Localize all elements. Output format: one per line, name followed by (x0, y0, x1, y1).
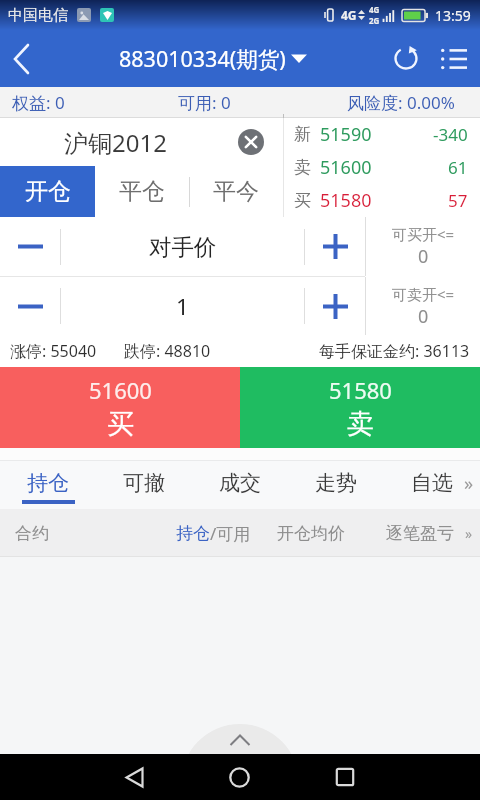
button[interactable]: 走势 (288, 461, 384, 509)
staticText: 4G (341, 7, 357, 23)
staticText: 可撤 (123, 470, 165, 496)
staticText: 883010334(期货) (119, 44, 286, 73)
staticText: /可用 (210, 522, 251, 545)
button[interactable]: Clear contract (238, 129, 264, 155)
staticText: 51580 (320, 188, 372, 213)
staticText: 可用: 0 (178, 91, 231, 114)
staticText: 61 (448, 156, 468, 179)
staticText: 51600 (89, 375, 152, 405)
staticText: 开仓均价 (277, 523, 345, 544)
button[interactable]: Recents (321, 754, 369, 800)
staticText: 卖 (347, 407, 374, 441)
staticText: 57 (448, 189, 468, 212)
button[interactable]: Menu (428, 30, 480, 87)
staticText: -340 (433, 123, 468, 146)
staticText: 51580 (329, 375, 392, 405)
staticText: 买 (107, 407, 134, 441)
button[interactable]: Home (215, 754, 263, 800)
staticText: 51590 (320, 122, 372, 147)
staticText: 51600 (320, 155, 372, 180)
staticText: 自选 (411, 470, 453, 496)
staticText: 开仓 (25, 177, 71, 206)
staticText: 0 (418, 304, 429, 329)
button[interactable]: Increase (305, 217, 365, 276)
staticText: » (465, 524, 473, 543)
staticText: 逐笔盈亏 (386, 523, 454, 544)
button[interactable]: More tabs (458, 461, 480, 509)
staticText: 持仓 (27, 470, 69, 496)
staticText: 可卖开<= (392, 284, 455, 304)
button[interactable]: Decrease (0, 217, 60, 276)
staticText: 卖 (294, 157, 311, 178)
staticText: 13:59 (435, 6, 471, 25)
button[interactable]: 持仓 (0, 461, 96, 509)
staticText: 平今 (213, 177, 259, 206)
button[interactable]: Decrease (0, 277, 60, 335)
staticText: 2G (369, 15, 380, 26)
staticText: 4G (369, 4, 380, 15)
staticText: 新 (294, 124, 311, 145)
button[interactable]: 51580 (240, 367, 480, 448)
staticText: 权益: 0 (12, 91, 65, 114)
button[interactable]: 平仓 (95, 166, 189, 217)
button[interactable]: Back (110, 754, 158, 800)
staticText: 沪铜2012 (64, 126, 167, 159)
staticText: » (464, 471, 474, 496)
staticText: 成交 (219, 470, 261, 496)
staticText: 每手保证金约: 36113 (319, 340, 470, 362)
staticText: 持仓 (176, 523, 210, 544)
button[interactable]: 51600 (0, 367, 240, 448)
button[interactable]: Back (0, 30, 43, 87)
staticText: 中国电信 (8, 6, 68, 25)
button[interactable]: Increase (305, 277, 365, 335)
staticText: 合约 (15, 523, 49, 544)
button[interactable]: Refresh (386, 30, 428, 87)
button[interactable]: 883010334(期货) (119, 44, 307, 73)
staticText: 1 (176, 291, 189, 322)
staticText: 平仓 (119, 177, 165, 206)
staticText: 风险度: 0.00% (347, 91, 455, 114)
staticText: 跌停: 48810 (124, 340, 211, 362)
button[interactable]: 开仓 (0, 166, 95, 217)
staticText: 0 (418, 244, 429, 269)
button[interactable]: 自选 (384, 461, 480, 509)
staticText: 买 (294, 190, 311, 211)
staticText: 走势 (315, 470, 357, 496)
staticText: 对手价 (149, 233, 217, 261)
staticText: 涨停: 55040 (10, 340, 97, 362)
button[interactable]: 平今 (189, 166, 283, 217)
staticText: 可买开<= (392, 224, 455, 244)
button[interactable]: 可撤 (96, 461, 192, 509)
button[interactable]: 成交 (192, 461, 288, 509)
button[interactable]: Expand panel (181, 724, 299, 800)
